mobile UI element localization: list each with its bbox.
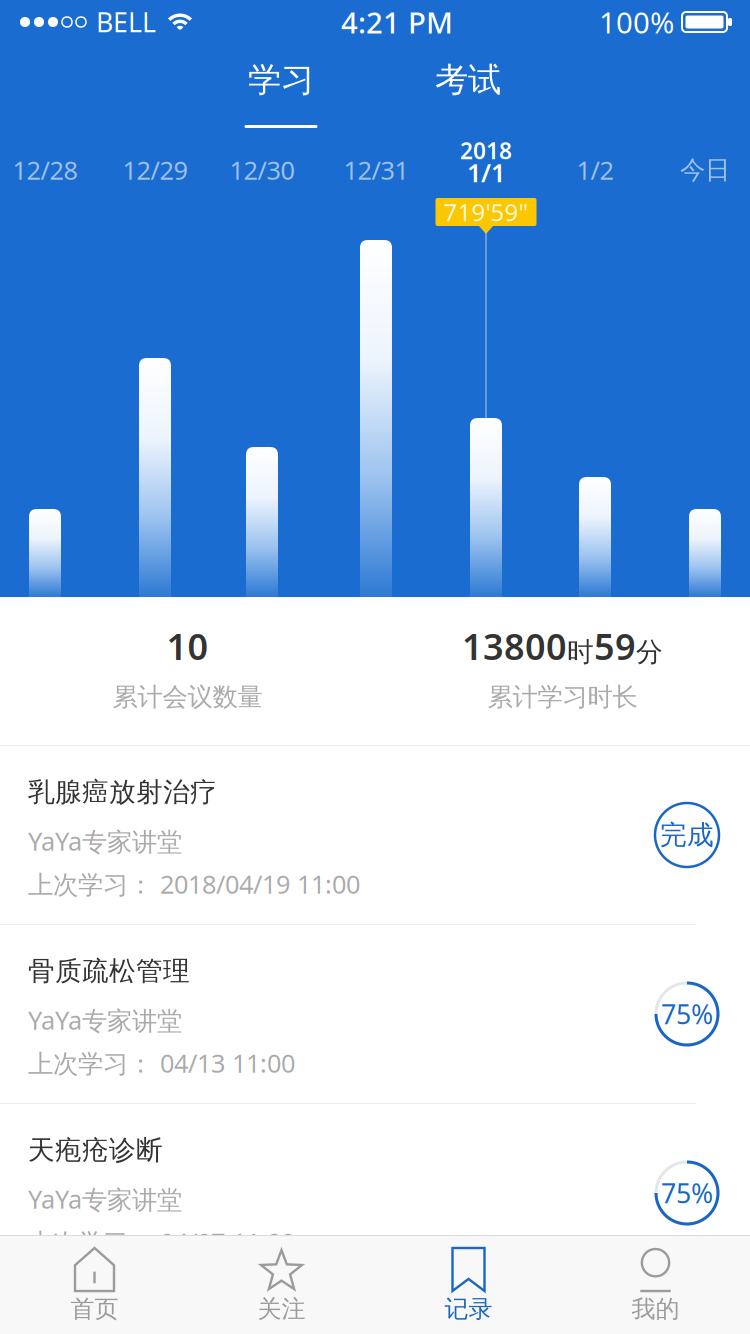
staticText: 1/2 bbox=[576, 153, 613, 187]
staticText: BELL bbox=[96, 4, 156, 40]
staticText: 首页 bbox=[70, 1294, 118, 1324]
staticText: 乳腺癌放射治疗 bbox=[28, 776, 217, 808]
staticText: 10 bbox=[166, 622, 208, 670]
button[interactable]: 12/29 bbox=[103, 134, 207, 190]
staticText: 上次学习： 04/13 11:00 bbox=[28, 1046, 295, 1080]
staticText: 累计学习时长 bbox=[487, 681, 637, 712]
staticText: 今日 bbox=[680, 154, 730, 185]
button[interactable]: 12/31 bbox=[324, 134, 428, 190]
button[interactable]: 关注 bbox=[188, 1236, 375, 1334]
staticText: 记录 bbox=[444, 1294, 492, 1324]
staticText: 天疱疮诊断 bbox=[28, 1134, 163, 1166]
button[interactable]: 记录 bbox=[375, 1236, 562, 1334]
staticText: 4:21 PM bbox=[341, 2, 453, 41]
staticText: 上次学习： 04/07 11:00 bbox=[28, 1225, 295, 1259]
staticText: 13800时59分 bbox=[462, 622, 663, 670]
button[interactable]: 乳腺癌放射治疗 bbox=[0, 746, 750, 924]
staticText: 12/31 bbox=[343, 153, 408, 187]
staticText: 学习 bbox=[248, 59, 314, 100]
staticText: 75% bbox=[661, 1175, 713, 1211]
button[interactable]: 天疱疮诊断 bbox=[0, 1104, 750, 1282]
staticText: 上次学习： 2018/04/19 11:00 bbox=[28, 867, 360, 901]
button[interactable]: 1/2 bbox=[543, 134, 647, 190]
staticText: 我的 bbox=[631, 1294, 679, 1324]
staticText: 2018 bbox=[460, 135, 512, 165]
staticText: 1/1 bbox=[467, 156, 505, 189]
staticText: 骨质疏松管理 bbox=[28, 955, 190, 987]
staticText: 75% bbox=[661, 996, 713, 1032]
staticText: 完成 bbox=[660, 819, 714, 851]
button[interactable]: 12/30 bbox=[210, 134, 314, 190]
staticText: YaYa专家讲堂 bbox=[28, 1182, 182, 1216]
staticText: 719'59" bbox=[443, 196, 528, 228]
staticText: 12/30 bbox=[229, 153, 294, 187]
staticText: 12/29 bbox=[122, 153, 187, 187]
staticText: 关注 bbox=[257, 1294, 305, 1324]
button[interactable]: 我的 bbox=[562, 1236, 749, 1334]
staticText: 考试 bbox=[435, 59, 501, 100]
button[interactable]: 学习 bbox=[187, 44, 374, 134]
staticText: YaYa专家讲堂 bbox=[28, 824, 182, 858]
staticText: 12/28 bbox=[12, 153, 77, 187]
staticText: 100% bbox=[599, 2, 674, 41]
staticText: 累计会议数量 bbox=[112, 681, 262, 712]
button[interactable]: 2018 bbox=[434, 134, 538, 190]
button[interactable]: 考试 bbox=[374, 44, 561, 134]
staticText: YaYa专家讲堂 bbox=[28, 1003, 182, 1037]
button[interactable]: 首页 bbox=[1, 1236, 188, 1334]
button[interactable]: 12/28 bbox=[0, 134, 97, 190]
button[interactable]: 今日 bbox=[653, 134, 750, 190]
button[interactable]: 骨质疏松管理 bbox=[0, 925, 750, 1103]
